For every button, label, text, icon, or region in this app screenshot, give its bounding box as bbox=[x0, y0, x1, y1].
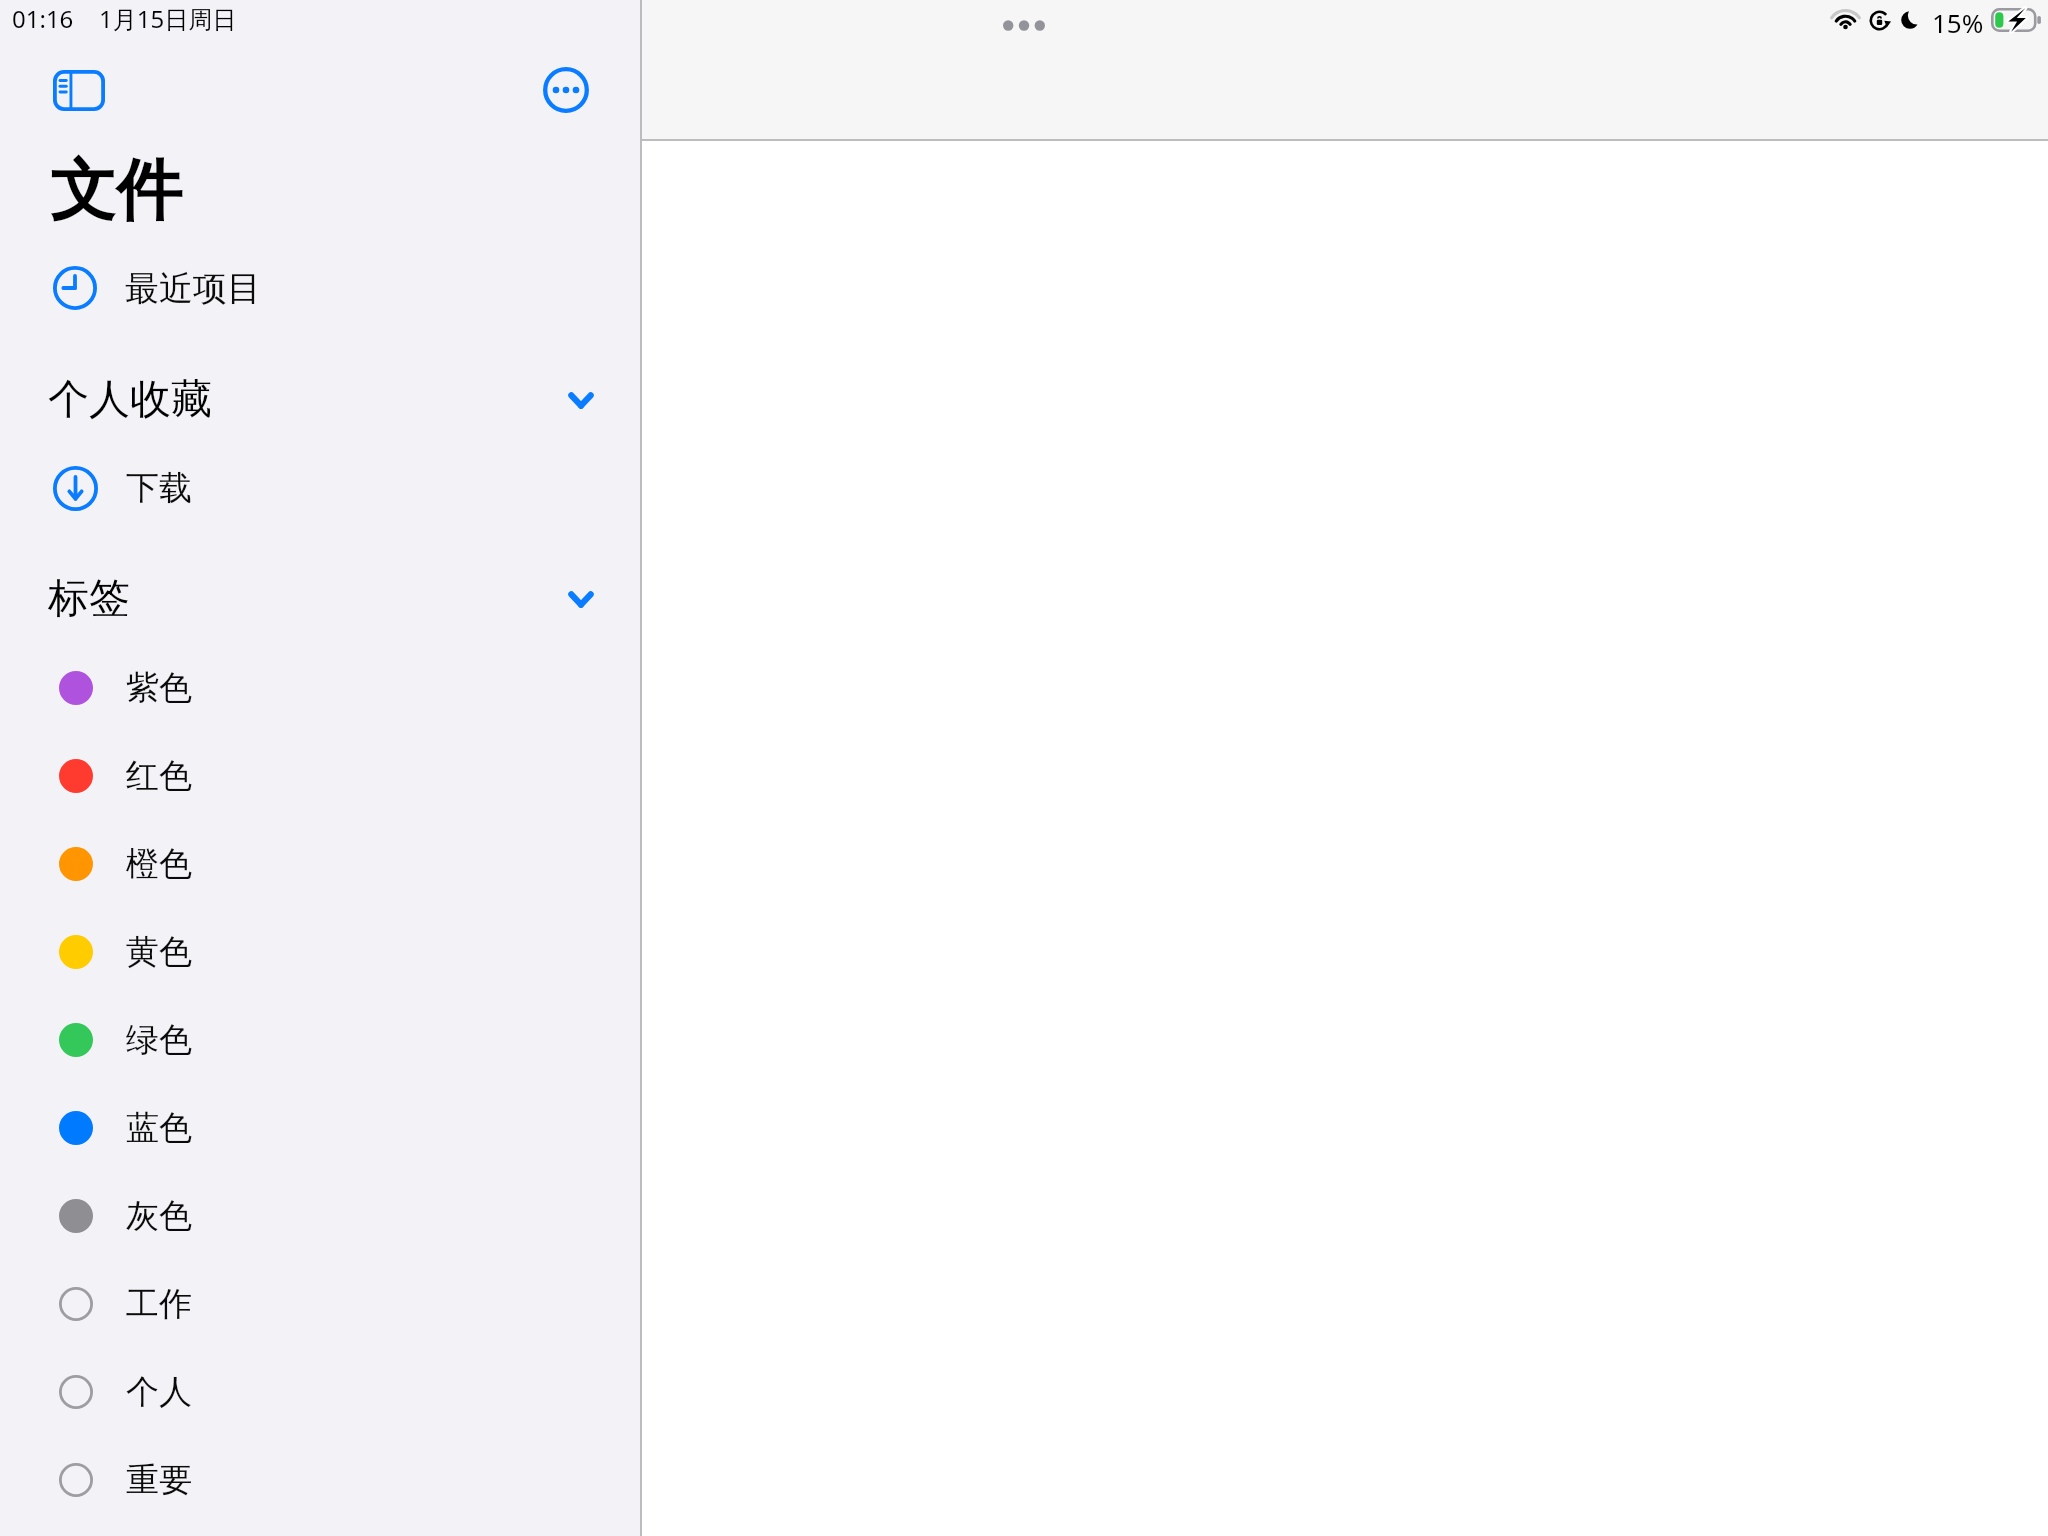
staticText: 01:16 bbox=[12, 2, 74, 35]
staticText: 15% bbox=[1932, 5, 1984, 35]
button[interactable]: 标签 bbox=[0, 571, 640, 627]
button[interactable]: 蓝色 bbox=[0, 1094, 640, 1162]
staticText: 文件 bbox=[50, 149, 182, 232]
button[interactable]: 绿色 bbox=[0, 1006, 640, 1074]
button[interactable]: More options bbox=[535, 59, 597, 121]
button[interactable]: 黄色 bbox=[0, 918, 640, 986]
staticText: 黄色 bbox=[126, 931, 192, 973]
staticText: 橙色 bbox=[126, 843, 192, 885]
staticText: 标签 bbox=[48, 573, 130, 625]
staticText: 绿色 bbox=[126, 1019, 192, 1061]
staticText: 红色 bbox=[126, 755, 192, 797]
button[interactable]: 重要 bbox=[0, 1446, 640, 1514]
button[interactable]: 橙色 bbox=[0, 830, 640, 898]
button[interactable]: 最近项目 bbox=[0, 256, 640, 320]
staticText: 灰色 bbox=[126, 1195, 192, 1237]
staticText: 1月15日周日 bbox=[99, 2, 237, 35]
staticText: 紫色 bbox=[126, 667, 192, 709]
button[interactable]: 工作 bbox=[0, 1270, 640, 1338]
staticText: 下载 bbox=[126, 467, 192, 509]
staticText: 最近项目 bbox=[125, 267, 261, 310]
staticText: 个人 bbox=[126, 1371, 192, 1413]
button[interactable]: 个人收藏 bbox=[0, 372, 640, 428]
button[interactable]: 灰色 bbox=[0, 1182, 640, 1250]
button[interactable]: More bbox=[983, 5, 1065, 45]
button[interactable]: 紫色 bbox=[0, 654, 640, 722]
button[interactable]: 个人 bbox=[0, 1358, 640, 1426]
staticText: 重要 bbox=[126, 1459, 192, 1501]
staticText: 工作 bbox=[126, 1283, 192, 1325]
button[interactable]: 下载 bbox=[0, 456, 640, 520]
button[interactable]: Toggle sidebar bbox=[41, 62, 116, 119]
button[interactable]: 红色 bbox=[0, 742, 640, 810]
staticText: 个人收藏 bbox=[48, 374, 212, 426]
staticText: 蓝色 bbox=[126, 1107, 192, 1149]
